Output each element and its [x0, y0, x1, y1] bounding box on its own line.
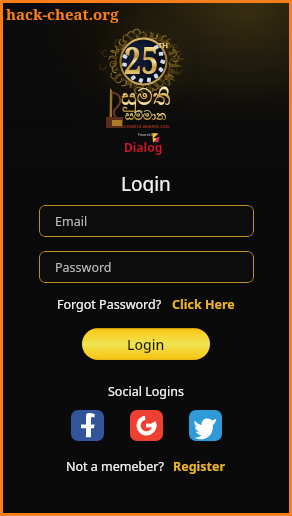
staticText: SUMATHI AWARDS 2020 — [123, 124, 170, 129]
staticText: TH — [158, 40, 169, 50]
button[interactable]: Register — [173, 458, 226, 475]
button[interactable]: Facebook — [71, 410, 104, 441]
staticText: Click Here — [172, 296, 235, 313]
staticText: Not a memeber? — [66, 458, 164, 475]
staticText: Password — [55, 259, 112, 276]
button[interactable]: Click Here — [172, 296, 235, 313]
button[interactable]: Google — [130, 410, 163, 441]
staticText: Forgot Password? — [57, 296, 162, 313]
button[interactable]: Login — [82, 328, 210, 360]
button[interactable]: Password — [39, 251, 254, 283]
staticText: 25 — [124, 33, 158, 85]
staticText: Powered by — [138, 133, 155, 137]
staticText: Login — [127, 335, 165, 354]
staticText: Social Logins — [108, 383, 184, 399]
staticText: සුමති — [121, 87, 171, 109]
staticText: සම්මාන — [125, 110, 167, 123]
button[interactable]: Twitter — [189, 410, 222, 441]
staticText: Email — [55, 213, 88, 230]
staticText: hack-cheat.org — [6, 4, 119, 24]
staticText: Register — [173, 458, 226, 475]
staticText: Login — [121, 171, 171, 193]
staticText: Dialog — [124, 139, 163, 155]
button[interactable]: Email — [39, 205, 254, 237]
